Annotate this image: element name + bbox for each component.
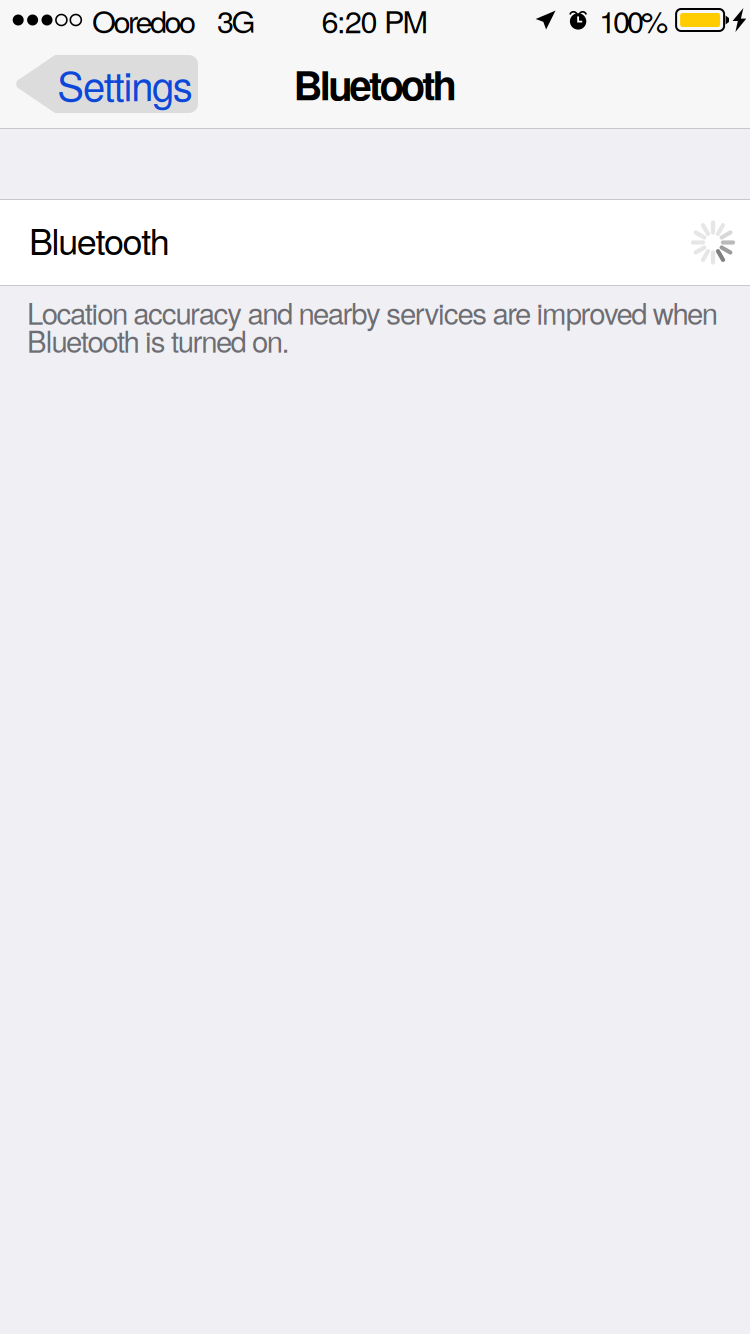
staticText: 100% bbox=[599, 0, 668, 42]
staticText: Bluetooth is turned on. bbox=[27, 319, 289, 361]
button[interactable]: Bluetooth bbox=[0, 200, 750, 285]
staticText: Bluetooth bbox=[293, 55, 457, 113]
staticText: Location accuracy and nearby services ar… bbox=[27, 291, 718, 333]
button[interactable]: Settings bbox=[14, 55, 198, 113]
staticText: 3G bbox=[217, 0, 255, 42]
staticText: Settings bbox=[57, 55, 193, 113]
staticText: 6:20 PM bbox=[321, 0, 429, 42]
staticText: Bluetooth bbox=[29, 214, 170, 265]
staticText: Ooredoo bbox=[92, 0, 196, 42]
